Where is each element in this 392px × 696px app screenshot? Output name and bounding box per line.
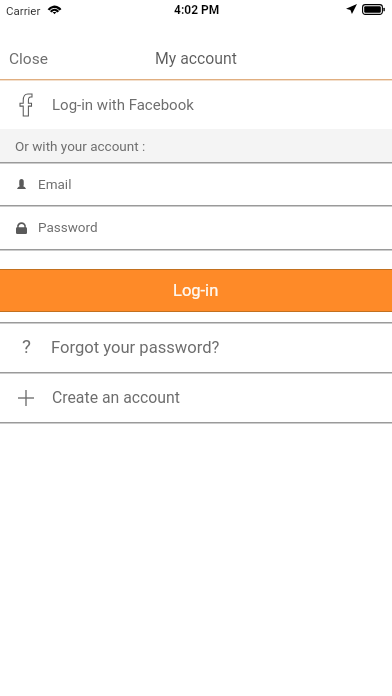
staticText: Close bbox=[9, 50, 48, 68]
staticText: Carrier bbox=[6, 4, 41, 17]
button[interactable]: Facebook bbox=[0, 80, 392, 129]
staticText: Password bbox=[38, 219, 98, 235]
other: Add bbox=[18, 390, 34, 406]
button[interactable]: Log-in bbox=[0, 269, 392, 312]
staticText: Email bbox=[38, 176, 72, 192]
button[interactable]: Close bbox=[0, 40, 57, 78]
staticText: Forgot your password? bbox=[51, 338, 220, 357]
staticText: Log-in with Facebook bbox=[52, 96, 194, 114]
staticText: My account bbox=[155, 49, 237, 68]
staticText: ? bbox=[22, 335, 31, 355]
staticText: Or with your account : bbox=[15, 138, 146, 154]
button[interactable]: Email bbox=[0, 163, 392, 205]
staticText: 4:02 PM bbox=[174, 3, 220, 17]
staticText: Log-in bbox=[173, 281, 219, 300]
staticText: Create an account bbox=[52, 388, 180, 407]
button[interactable]: Help bbox=[0, 323, 392, 372]
button[interactable]: Password bbox=[0, 206, 392, 249]
other: Facebook bbox=[20, 94, 32, 116]
button[interactable]: Add bbox=[0, 373, 392, 422]
other: Help bbox=[21, 335, 31, 355]
